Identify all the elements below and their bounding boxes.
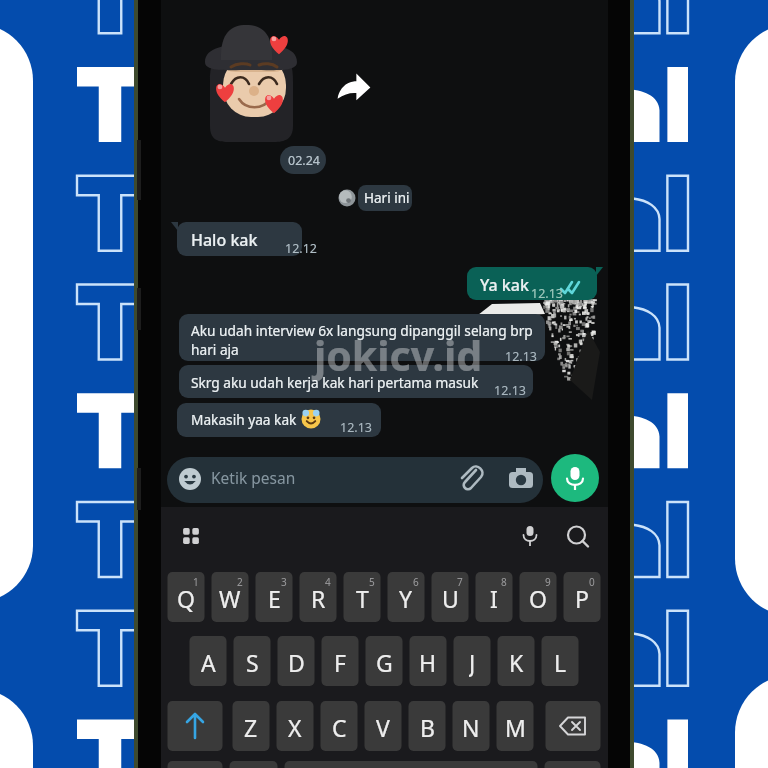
staticText: 12.13	[531, 285, 563, 302]
staticText: W	[219, 583, 241, 613]
button[interactable]: L	[540, 647, 580, 677]
button[interactable]: P	[562, 583, 602, 613]
staticText: S	[246, 647, 259, 677]
button[interactable]: Search	[562, 521, 594, 553]
staticText: 12.13	[494, 382, 526, 399]
staticText: L	[554, 647, 567, 677]
button[interactable]: D	[276, 647, 316, 677]
staticText: K	[509, 647, 524, 677]
button[interactable]: Emoji	[176, 463, 206, 495]
staticText: V	[376, 712, 390, 742]
staticText: I	[490, 583, 498, 613]
button[interactable]: J	[452, 647, 492, 677]
button[interactable]: M	[495, 712, 535, 742]
staticText: D	[288, 647, 305, 677]
staticText: 0	[589, 575, 595, 589]
button[interactable]: S	[232, 647, 272, 677]
button[interactable]: I	[474, 583, 514, 613]
staticText: O	[529, 583, 547, 613]
button[interactable]: K	[496, 647, 536, 677]
button[interactable]: Q	[166, 583, 206, 613]
staticText: 3	[281, 575, 287, 589]
button[interactable]: Ya kak 12.13	[467, 267, 597, 300]
button[interactable]: Z	[231, 712, 271, 742]
staticText: 6	[413, 575, 419, 589]
button[interactable]: R	[298, 583, 338, 613]
staticText: A	[201, 647, 216, 677]
staticText: J	[469, 647, 476, 677]
staticText: 12.13	[340, 419, 372, 436]
button[interactable]: Aku udah interview 6x langsung dipanggil…	[179, 314, 545, 361]
button[interactable]: Keyboard layouts	[176, 521, 208, 553]
button[interactable]: B	[407, 712, 447, 742]
staticText: 12.12	[285, 240, 317, 257]
staticText: hari aja	[191, 340, 239, 359]
staticText: M	[505, 712, 526, 742]
button[interactable]: N	[451, 712, 491, 742]
staticText: Ketik pesan	[211, 467, 296, 488]
button[interactable]: Camera	[505, 462, 538, 496]
staticText: F	[334, 647, 346, 677]
button[interactable]: Shift	[167, 701, 222, 751]
staticText: 1	[193, 575, 199, 589]
staticText: Z	[244, 712, 258, 742]
button[interactable]: Ketik pesan	[167, 457, 543, 503]
staticText: 2	[237, 575, 243, 589]
button[interactable]: Makasih yaa kak 12.13	[177, 403, 381, 437]
button[interactable]: G	[364, 647, 404, 677]
button[interactable]: Halo kak 12.12	[177, 222, 302, 256]
button[interactable]: Attach	[455, 462, 487, 496]
staticText: 8	[501, 575, 507, 589]
button[interactable]: H	[408, 647, 448, 677]
staticText: Skrg aku udah kerja kak hari pertama mas…	[191, 373, 479, 392]
staticText: 9	[545, 575, 551, 589]
button[interactable]: X	[275, 712, 315, 742]
staticText: Ya kak	[480, 274, 529, 296]
staticText: N	[462, 712, 480, 742]
staticText: G	[376, 647, 393, 677]
staticText: Hari ini	[364, 189, 410, 207]
staticText: 12.13	[505, 348, 537, 365]
staticText: 7	[457, 575, 463, 589]
button[interactable]: U	[430, 583, 470, 613]
button[interactable]: C	[319, 712, 359, 742]
staticText: 5	[369, 575, 375, 589]
button[interactable]: Skrg aku udah kerja kak hari pertama mas…	[179, 365, 533, 398]
staticText: 02.24	[288, 152, 320, 169]
staticText: U	[442, 583, 459, 613]
staticText: Y	[399, 583, 413, 613]
button[interactable]: F	[320, 647, 360, 677]
button[interactable]: W	[210, 583, 250, 613]
staticText: Q	[177, 583, 195, 613]
staticText: B	[420, 712, 435, 742]
button[interactable]: T	[342, 583, 382, 613]
button[interactable]: O	[518, 583, 558, 613]
staticText: jokicv.id	[314, 327, 483, 383]
staticText: C	[332, 712, 347, 742]
button[interactable]: Voice input	[514, 521, 546, 553]
staticText: T	[356, 583, 369, 613]
button[interactable]: Y	[386, 583, 426, 613]
staticText: Aku udah interview 6x langsung dipanggil…	[191, 321, 533, 340]
button[interactable]: Record voice message	[551, 454, 599, 502]
staticText: X	[288, 712, 302, 742]
button[interactable]: V	[363, 712, 403, 742]
button[interactable]: Backspace	[545, 701, 600, 751]
staticText: R	[311, 583, 326, 613]
button[interactable]: E	[254, 583, 294, 613]
staticText: E	[268, 583, 281, 613]
staticText: Halo kak	[191, 229, 258, 251]
staticText: 4	[325, 575, 331, 589]
staticText: H	[419, 647, 437, 677]
staticText: P	[575, 583, 589, 613]
button[interactable]: A	[188, 647, 228, 677]
staticText: Makasih yaa kak	[191, 410, 297, 429]
